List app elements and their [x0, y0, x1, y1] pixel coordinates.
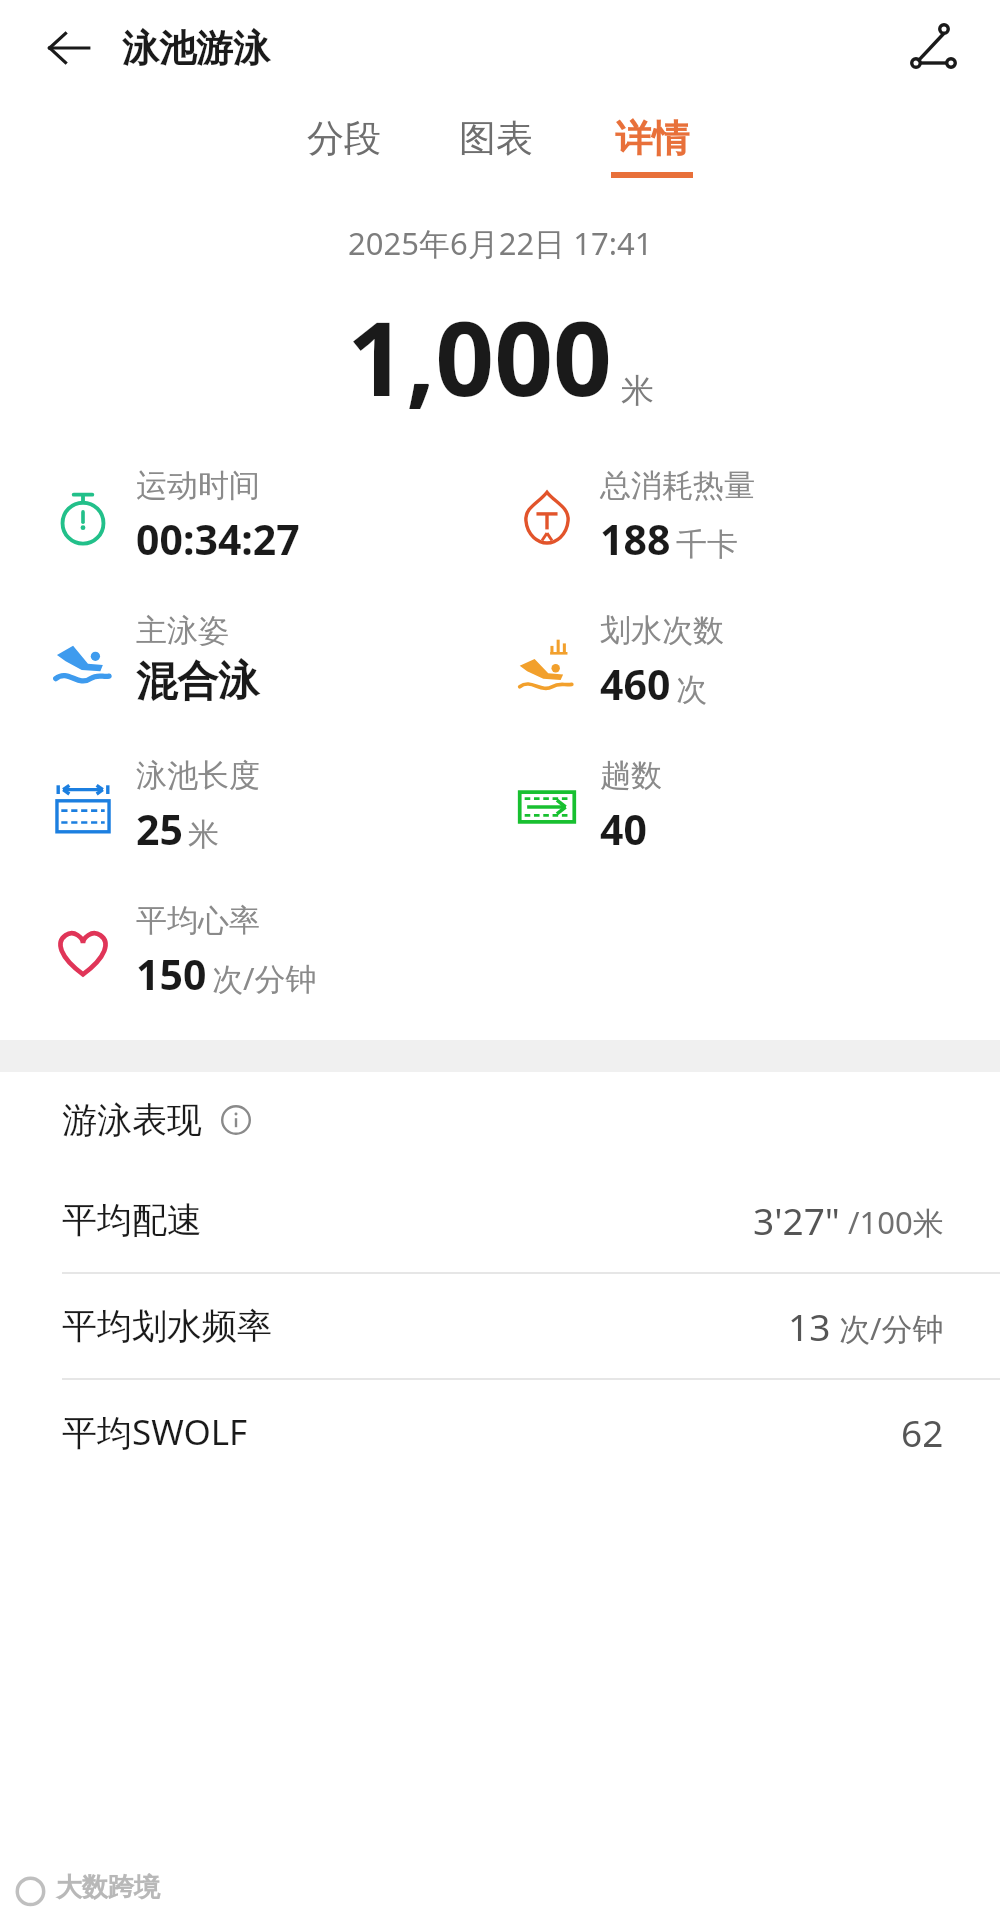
staticText: 188: [600, 511, 671, 567]
button[interactable]: 趟数: [508, 756, 662, 857]
staticText: 分段: [307, 115, 381, 162]
staticText: 运动时间: [136, 466, 260, 505]
staticText: 详情: [615, 115, 689, 162]
staticText: 混合泳: [136, 656, 259, 708]
staticText: 150: [136, 946, 207, 1002]
button[interactable]: 泳池长度: [44, 756, 260, 857]
staticText: /100米: [840, 1201, 944, 1243]
button[interactable]: 运动时间: [44, 466, 300, 567]
staticText: 13: [788, 1301, 831, 1351]
staticText: 次/分钟: [831, 1307, 944, 1349]
button[interactable]: 详情: [593, 109, 711, 184]
staticText: 千卡: [676, 525, 738, 564]
staticText: 图表: [459, 115, 533, 162]
staticText: 泳池游泳: [122, 25, 270, 72]
staticText: 平均SWOLF: [62, 1408, 248, 1456]
button[interactable]: 平均心率: [44, 901, 317, 1002]
staticText: 次: [676, 670, 707, 709]
staticText: 游泳表现: [62, 1098, 202, 1142]
button[interactable]: 划水次数: [508, 611, 724, 712]
staticText: 泳池长度: [136, 756, 260, 795]
button[interactable]: 图表: [441, 109, 551, 184]
staticText: 3'27": [753, 1195, 840, 1245]
staticText: 25: [136, 801, 183, 857]
staticText: 平均配速: [62, 1198, 202, 1242]
staticText: 460: [600, 656, 671, 712]
staticText: 00:34:27: [136, 511, 300, 567]
button[interactable]: Back: [38, 17, 100, 79]
staticText: 40: [600, 801, 647, 857]
button[interactable]: 平均配速: [0, 1168, 1000, 1272]
staticText: 2025年6月22日 17:41: [348, 222, 653, 264]
staticText: 62: [901, 1407, 944, 1457]
button[interactable]: 总消耗热量: [508, 466, 755, 567]
staticText: 平均划水频率: [62, 1304, 272, 1348]
staticText: 米: [188, 815, 219, 854]
button[interactable]: 主泳姿: [44, 611, 259, 708]
staticText: 1,000: [347, 286, 613, 426]
button[interactable]: Share: [898, 13, 968, 83]
staticText: 大数跨境: [56, 1871, 160, 1904]
staticText: 总消耗热量: [600, 466, 755, 505]
button[interactable]: Info: [216, 1100, 256, 1140]
staticText: 次/分钟: [212, 957, 317, 999]
staticText: 划水次数: [600, 611, 724, 650]
staticText: 主泳姿: [136, 611, 229, 650]
staticText: 趟数: [600, 756, 662, 795]
button[interactable]: 平均SWOLF: [0, 1380, 1000, 1484]
button[interactable]: 平均划水频率: [0, 1274, 1000, 1378]
staticText: 平均心率: [136, 901, 260, 940]
staticText: 米: [621, 370, 654, 412]
button[interactable]: 分段: [289, 109, 399, 184]
